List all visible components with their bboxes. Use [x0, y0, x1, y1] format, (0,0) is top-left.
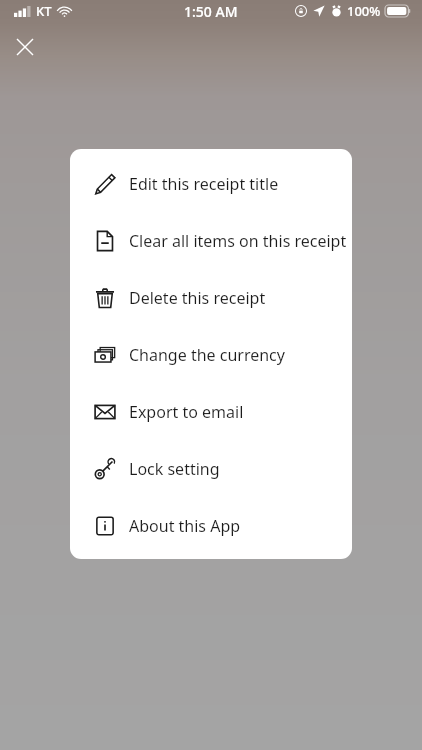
button[interactable]: Lock setting: [70, 440, 352, 497]
staticText: Edit this receipt title: [129, 173, 279, 195]
button[interactable]: About this App: [70, 497, 352, 554]
staticText: Export to email: [129, 401, 244, 423]
staticText: About this App: [129, 515, 241, 537]
button[interactable]: Edit this receipt title: [70, 155, 352, 212]
staticText: Delete this receipt: [129, 287, 266, 309]
button[interactable]: Clear all items on this receipt: [70, 212, 352, 269]
staticText: 1:50 AM: [184, 2, 238, 21]
staticText: Change the currency: [129, 344, 285, 366]
staticText: Lock setting: [129, 458, 220, 480]
button[interactable]: Export to email: [70, 383, 352, 440]
button[interactable]: Change the currency: [70, 326, 352, 383]
button[interactable]: Delete this receipt: [70, 269, 352, 326]
staticText: Clear all items on this receipt: [129, 230, 347, 252]
button[interactable]: Close: [9, 31, 41, 63]
staticText: 100%: [347, 2, 381, 20]
staticText: KT: [36, 2, 52, 20]
